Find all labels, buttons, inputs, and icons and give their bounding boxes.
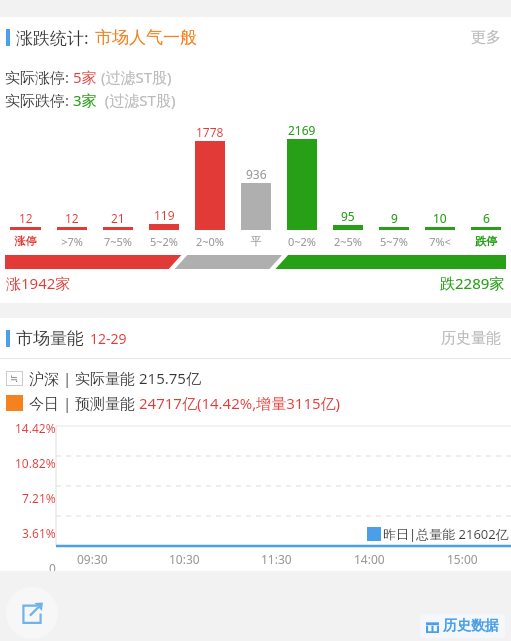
staticText: 3家 bbox=[73, 90, 97, 110]
staticText: 跌2289家 bbox=[440, 273, 505, 293]
staticText: 3.61% bbox=[22, 525, 56, 541]
staticText: 5家 bbox=[73, 67, 97, 87]
staticText: 涨1942家 bbox=[6, 273, 71, 293]
staticText: 历史数据 bbox=[443, 617, 499, 635]
button[interactable]: 历史量能 bbox=[437, 325, 505, 352]
staticText: 12 bbox=[65, 210, 79, 226]
staticText: 14:00 bbox=[354, 551, 385, 567]
staticText: 12 bbox=[19, 210, 33, 226]
staticText: 10:30 bbox=[169, 551, 200, 567]
staticText: 7.21% bbox=[22, 490, 56, 506]
staticText: 沪深 | 实际量能 215.75亿 bbox=[29, 368, 201, 388]
staticText: 实际跌停: bbox=[5, 90, 73, 110]
staticText: 0 bbox=[49, 560, 56, 571]
staticText: 11:30 bbox=[261, 551, 292, 567]
staticText: 市场量能 bbox=[16, 328, 84, 349]
staticText: 5~7% bbox=[371, 234, 417, 249]
staticText: 2~0% bbox=[187, 234, 233, 249]
staticText: 2169 bbox=[288, 122, 316, 138]
staticText: 2~5% bbox=[325, 234, 371, 249]
staticText: 今日 | 预测量能 bbox=[29, 393, 139, 413]
staticText: 21 bbox=[111, 210, 125, 226]
staticText: 更多 bbox=[471, 28, 501, 47]
staticText: 95 bbox=[341, 208, 355, 224]
button[interactable] bbox=[5, 255, 506, 269]
staticText: 1778 bbox=[196, 124, 224, 140]
button[interactable]: 历史数据 bbox=[420, 614, 505, 638]
staticText: 历史量能 bbox=[441, 329, 501, 348]
staticText: 6 bbox=[483, 210, 490, 226]
staticText: 936 bbox=[246, 166, 267, 182]
staticText: 涨跌统计: bbox=[16, 26, 89, 49]
staticText: 9 bbox=[391, 210, 398, 226]
staticText: 09:30 bbox=[77, 551, 108, 567]
staticText: ≒ bbox=[10, 373, 19, 385]
staticText: 7~5% bbox=[95, 234, 141, 249]
staticText: 10.82% bbox=[15, 455, 56, 471]
staticText: (过滤ST股) bbox=[97, 90, 176, 110]
staticText: 市场人气一般 bbox=[95, 27, 197, 48]
staticText: 12-29 bbox=[90, 329, 127, 348]
button[interactable]: 分享 bbox=[6, 587, 58, 639]
staticText: (过滤ST股) bbox=[97, 67, 172, 87]
staticText: 0~2% bbox=[279, 234, 325, 249]
staticText: 跌停 bbox=[463, 234, 509, 248]
staticText: 昨日|总量能 21602亿 bbox=[383, 525, 509, 543]
staticText: 14.42% bbox=[15, 420, 56, 436]
staticText: 涨停 bbox=[2, 234, 49, 248]
staticText: 15:00 bbox=[447, 551, 478, 567]
staticText: 平 bbox=[233, 234, 279, 248]
staticText: 5~2% bbox=[141, 234, 187, 249]
staticText: 7%< bbox=[417, 234, 463, 249]
staticText: 119 bbox=[154, 207, 175, 223]
staticText: 实际涨停: bbox=[5, 67, 73, 87]
staticText: >7% bbox=[49, 234, 95, 249]
staticText: 24717亿(14.42%,增量3115亿) bbox=[139, 393, 341, 413]
button[interactable]: 更多 bbox=[467, 24, 505, 51]
staticText: 10 bbox=[433, 210, 447, 226]
